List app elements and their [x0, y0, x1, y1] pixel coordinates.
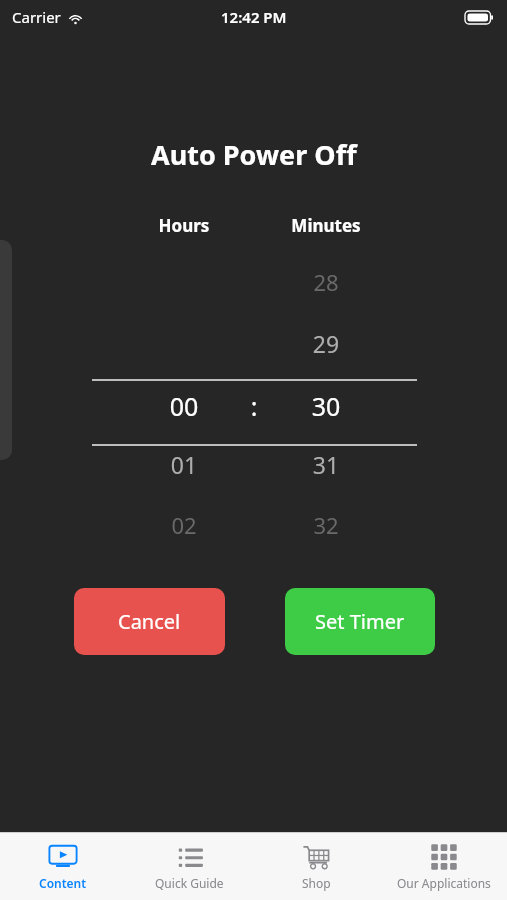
button[interactable]: Quick Guide — [126, 833, 253, 900]
staticText: Content — [39, 875, 87, 891]
staticText: 29 — [276, 328, 376, 359]
staticText: 12:42 PM — [221, 7, 287, 27]
staticText: Shop — [302, 875, 331, 891]
staticText: 31 — [276, 449, 376, 480]
staticText: Our Applications — [397, 875, 491, 891]
staticText: 00 — [134, 389, 234, 423]
staticText: Cancel — [118, 608, 181, 635]
button[interactable]: Shop — [253, 833, 380, 900]
button[interactable]: Cancel — [74, 588, 225, 655]
staticText: Auto Power Off — [151, 136, 357, 173]
staticText: Minutes — [276, 214, 376, 237]
staticText: 28 — [276, 267, 376, 297]
staticText: 01 — [134, 449, 234, 480]
staticText: : — [229, 389, 279, 423]
staticText: Carrier — [12, 7, 61, 27]
staticText: Hours — [134, 214, 234, 237]
staticText: 32 — [276, 510, 376, 540]
staticText: Set Timer — [315, 608, 405, 635]
staticText: 30 — [276, 389, 376, 423]
staticText: Quick Guide — [155, 875, 224, 891]
staticText: 02 — [134, 510, 234, 540]
button[interactable]: Set Timer — [285, 588, 435, 655]
button[interactable]: Content — [0, 833, 126, 900]
button[interactable]: Our Applications — [380, 833, 507, 900]
